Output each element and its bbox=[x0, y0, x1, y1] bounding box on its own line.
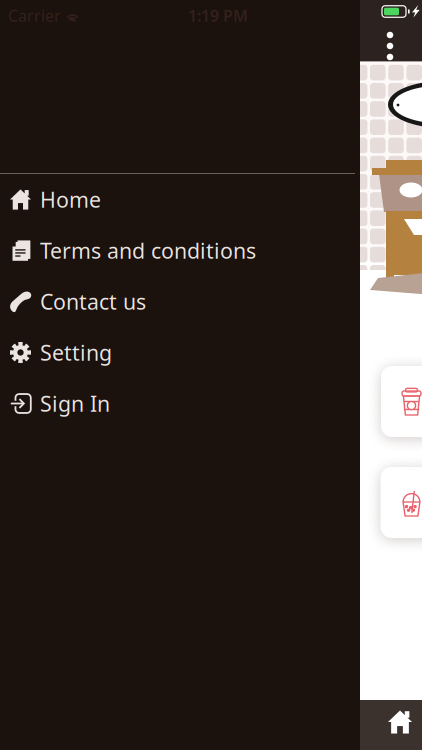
button[interactable]: Home tab bbox=[378, 700, 422, 744]
staticText: Setting bbox=[40, 338, 112, 367]
staticText: Contact us bbox=[40, 287, 146, 316]
staticText: Carrier bbox=[8, 5, 61, 26]
button[interactable]: Bubble tea bbox=[381, 467, 422, 538]
staticText: Home bbox=[40, 185, 101, 214]
staticText: Terms and conditions bbox=[40, 236, 256, 265]
button[interactable]: Home bbox=[0, 174, 340, 225]
staticText: 1:19 PM bbox=[188, 5, 248, 26]
button[interactable]: Sign In bbox=[0, 378, 340, 429]
button[interactable]: Contact us bbox=[0, 276, 340, 327]
button[interactable]: Setting bbox=[0, 327, 340, 378]
button[interactable]: Hot coffee bbox=[381, 366, 422, 437]
staticText: Sign In bbox=[40, 389, 110, 418]
button[interactable]: More options bbox=[373, 24, 407, 68]
button[interactable]: Terms and conditions bbox=[0, 225, 340, 276]
